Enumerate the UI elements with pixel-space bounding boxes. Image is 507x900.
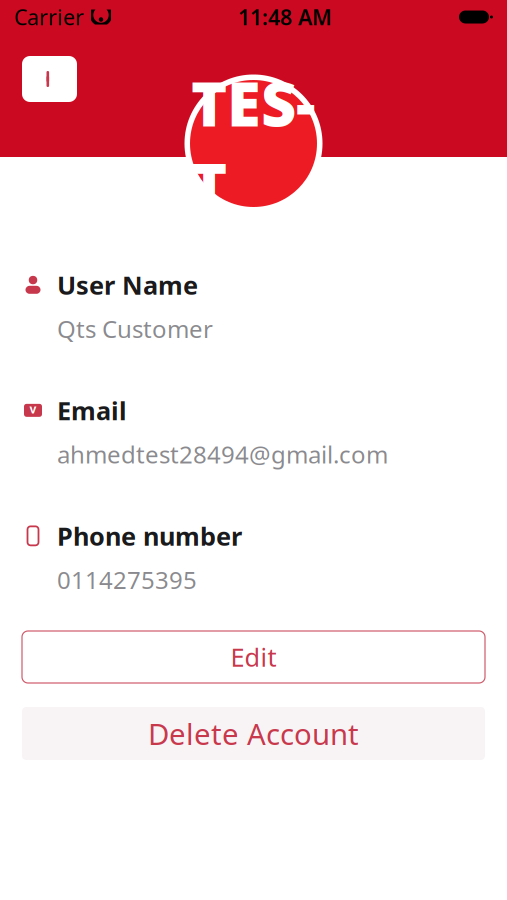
staticText: TEST [191, 62, 316, 225]
staticText: Qts Customer [57, 313, 213, 344]
staticText: 0114275395 [57, 564, 197, 596]
staticText: Carrier [14, 3, 84, 31]
staticText: Email [57, 393, 127, 427]
button[interactable]: Edit [22, 631, 485, 683]
button[interactable]: Back [22, 56, 77, 102]
staticText: User Name [57, 268, 198, 302]
staticText: v [29, 401, 36, 417]
staticText: Delete Account [148, 714, 359, 753]
staticText: Phone number [57, 519, 242, 553]
staticText: 11:48 AM [238, 3, 332, 31]
button[interactable]: Delete Account [22, 707, 485, 760]
staticText: Edit [230, 640, 276, 674]
staticText: ahmedtest28494@gmail.com [57, 438, 388, 470]
